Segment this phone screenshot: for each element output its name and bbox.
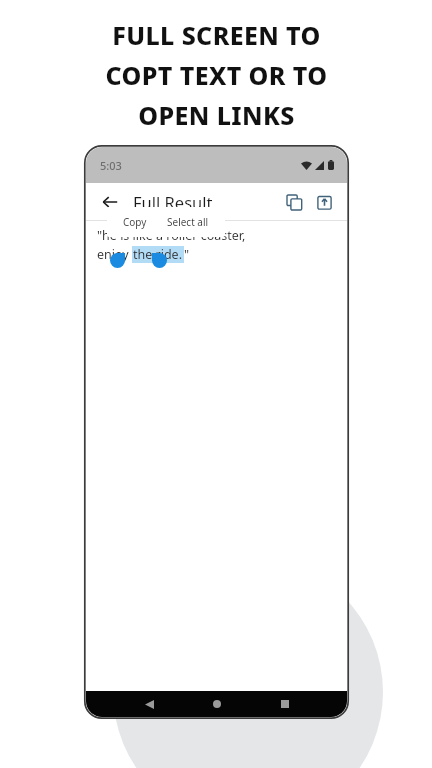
button[interactable]: Back <box>96 188 124 216</box>
button[interactable]: Home <box>206 693 228 715</box>
staticText: enjoy <box>97 246 132 263</box>
button[interactable]: Back <box>138 693 160 715</box>
staticText: "he is like a roller coaster, <box>97 227 246 244</box>
button[interactable]: Recents <box>274 693 296 715</box>
staticText: " <box>184 246 190 263</box>
staticText: FULL SCREEN TO <box>112 18 321 52</box>
staticText: Copy <box>123 215 147 229</box>
staticText: OPEN LINKS <box>138 98 295 132</box>
button[interactable]: Copy <box>279 187 309 217</box>
button[interactable]: Select all <box>161 213 215 231</box>
staticText: Select all <box>167 215 209 229</box>
staticText: COPT TEXT OR TO <box>105 58 328 92</box>
staticText: 5:03 <box>100 158 122 173</box>
staticText: the ride. <box>133 246 183 263</box>
staticText: Full Result <box>133 191 213 213</box>
button[interactable]: Open link <box>309 187 339 217</box>
button[interactable]: Copy <box>117 213 153 231</box>
